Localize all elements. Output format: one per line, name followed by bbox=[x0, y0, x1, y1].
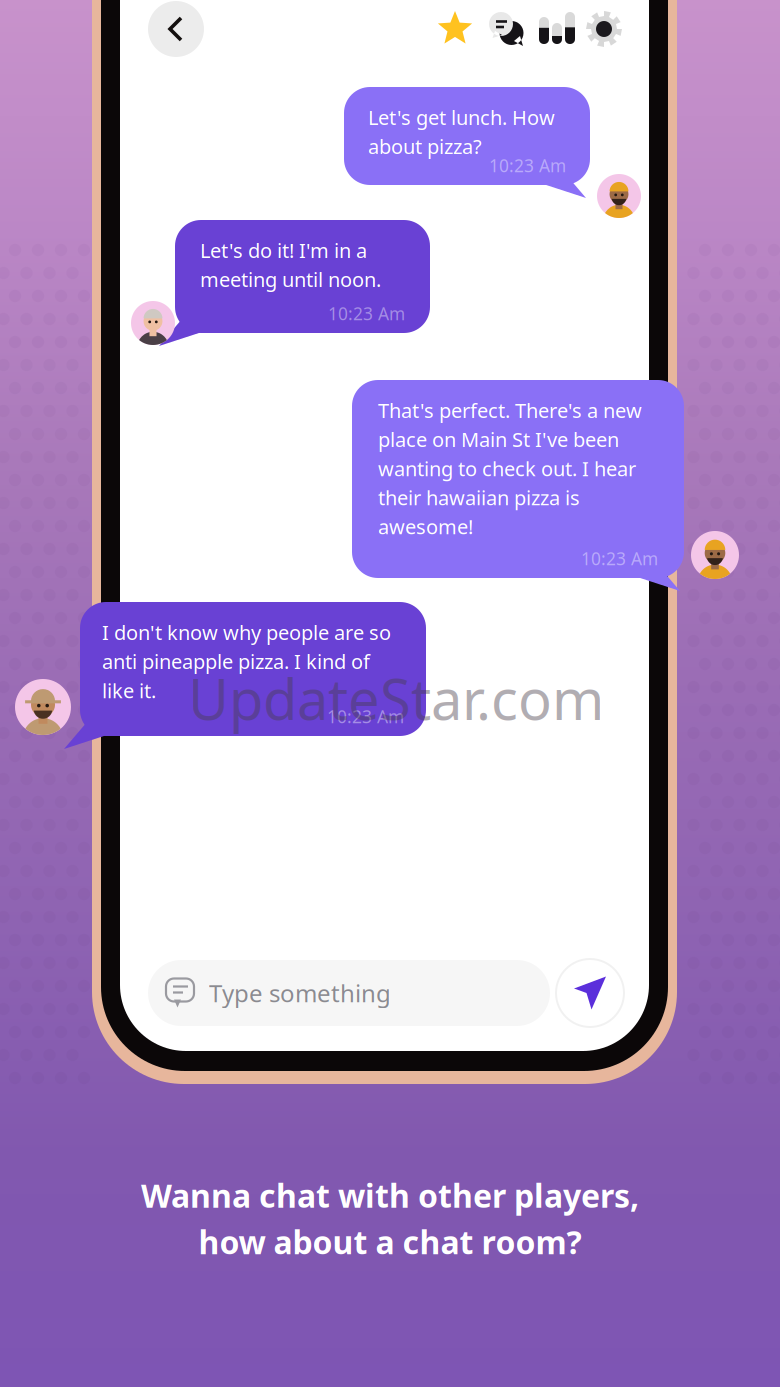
staticText: I don't know why people are so anti pine… bbox=[102, 619, 391, 704]
staticText: Type something bbox=[209, 977, 391, 1009]
staticText: Wanna chat with other players, bbox=[141, 1174, 639, 1216]
button[interactable]: Messages bbox=[488, 11, 524, 47]
staticText: 10:23 Am bbox=[328, 302, 405, 325]
button[interactable]: Back bbox=[148, 1, 204, 57]
staticText: Let's get lunch. How about pizza? bbox=[368, 104, 555, 160]
button[interactable]: Favorite bbox=[437, 11, 473, 47]
staticText: 10:23 Am bbox=[489, 154, 566, 177]
staticText: 10:23 Am bbox=[327, 705, 404, 728]
staticText: Let's do it! I'm in a meeting until noon… bbox=[200, 237, 381, 293]
button[interactable]: Send bbox=[555, 958, 625, 1028]
staticText: how about a chat room? bbox=[198, 1220, 581, 1263]
button[interactable]: Settings bbox=[586, 11, 622, 47]
button[interactable]: Statistics bbox=[539, 12, 575, 44]
staticText: That's perfect. There's a new place on M… bbox=[378, 397, 642, 540]
staticText: UpdateStar.com bbox=[188, 661, 604, 735]
staticText: 10:23 Am bbox=[581, 547, 658, 570]
